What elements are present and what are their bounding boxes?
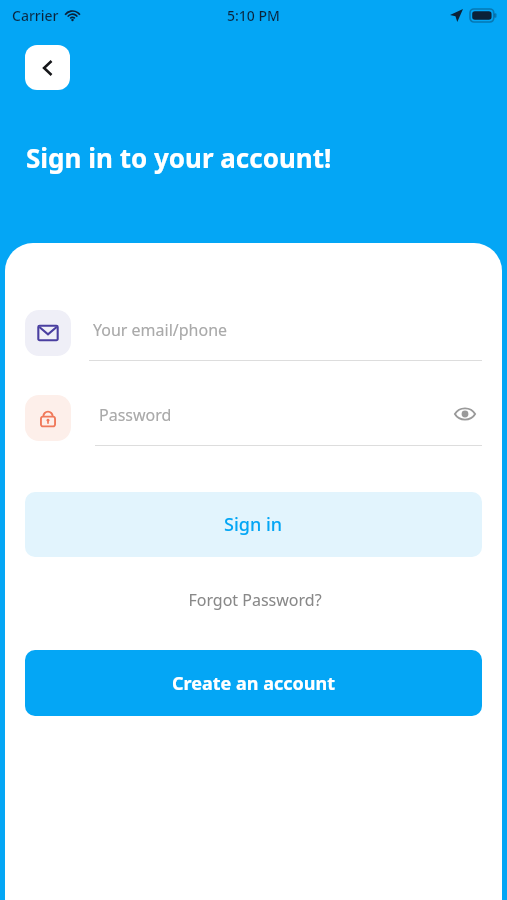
button[interactable]: Show password	[448, 397, 482, 431]
button[interactable]: Forgot Password?	[155, 583, 355, 617]
button[interactable]: Password	[25, 388, 482, 448]
staticText: 5:10 PM	[227, 6, 280, 25]
staticText: Your email/phone	[93, 319, 228, 341]
button[interactable]: Your email/phone	[25, 303, 482, 363]
staticText: Sign in	[224, 512, 283, 537]
staticText: Password	[99, 404, 172, 426]
button[interactable]: Back	[25, 45, 70, 90]
button[interactable]: Create an account	[25, 650, 482, 716]
staticText: Forgot Password?	[188, 589, 322, 611]
staticText: Create an account	[172, 671, 335, 696]
staticText: Sign in to your account!	[26, 140, 332, 175]
staticText: Carrier	[12, 6, 59, 25]
button[interactable]: Sign in	[25, 492, 482, 557]
